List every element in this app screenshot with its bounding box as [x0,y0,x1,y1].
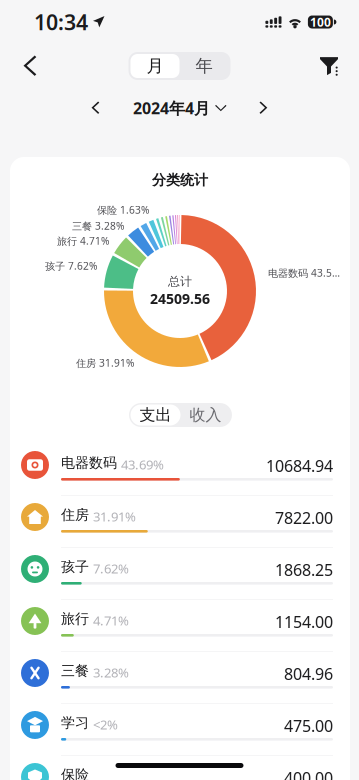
staticText: 旅行 4.71% [57,234,109,248]
button[interactable]: 2024年4月 [114,92,244,124]
staticText: 400.00 [284,767,333,780]
staticText: 3.28% [93,663,129,681]
staticText: 旅行 [61,610,89,628]
staticText: 保险 [61,766,89,780]
button[interactable]: Next month [244,92,282,124]
staticText: 年 [195,55,212,77]
staticText: 电器数码 43.5… [268,266,340,280]
staticText: 7.62% [93,559,129,577]
staticText: 月 [146,55,163,77]
staticText: 2024年4月 [133,97,210,119]
staticText: 10684.94 [266,455,333,477]
button[interactable]: 支出 [130,404,180,425]
button[interactable]: Previous month [76,92,114,124]
staticText: 1154.00 [275,611,333,633]
button[interactable]: 旅行 [10,600,350,652]
staticText: 10:34 [34,8,88,36]
button[interactable]: 电器数码 [10,444,350,496]
staticText: 孩子 [61,558,89,576]
staticText: 24509.56 [150,289,210,308]
staticText: 总计 [168,274,192,289]
button[interactable]: Filter [307,44,351,88]
staticText: 1868.25 [275,559,333,581]
staticText: 电器数码 [61,454,117,472]
staticText: 7822.00 [275,507,333,529]
button[interactable]: 月 [130,54,179,78]
button[interactable]: 年 [179,54,228,78]
button[interactable]: 住房 [10,496,350,548]
button[interactable]: Back [8,44,52,88]
staticText: 三餐 [61,662,89,680]
staticText: 保险 1.63% [97,203,149,217]
staticText: 孩子 7.62% [45,259,97,273]
button[interactable]: 保险 [10,756,350,780]
staticText: 住房 [61,506,89,524]
staticText: 支出 [139,405,171,425]
staticText: 31.91% [93,507,136,525]
staticText: 475.00 [284,715,333,737]
button[interactable]: 孩子 [10,548,350,600]
staticText: 学习 [61,714,89,732]
button[interactable]: 收入 [180,404,230,425]
staticText: 4.71% [93,611,129,629]
staticText: <2% [93,715,118,733]
button[interactable]: 学习 [10,704,350,756]
staticText: 收入 [189,405,221,425]
staticText: 三餐 3.28% [72,219,124,233]
staticText: 分类统计 [152,171,208,189]
staticText: 100 [310,14,331,30]
staticText: 804.96 [284,663,333,685]
button[interactable]: 三餐 [10,652,350,704]
staticText: 住房 31.91% [76,356,134,370]
staticText: 43.69% [121,455,164,473]
